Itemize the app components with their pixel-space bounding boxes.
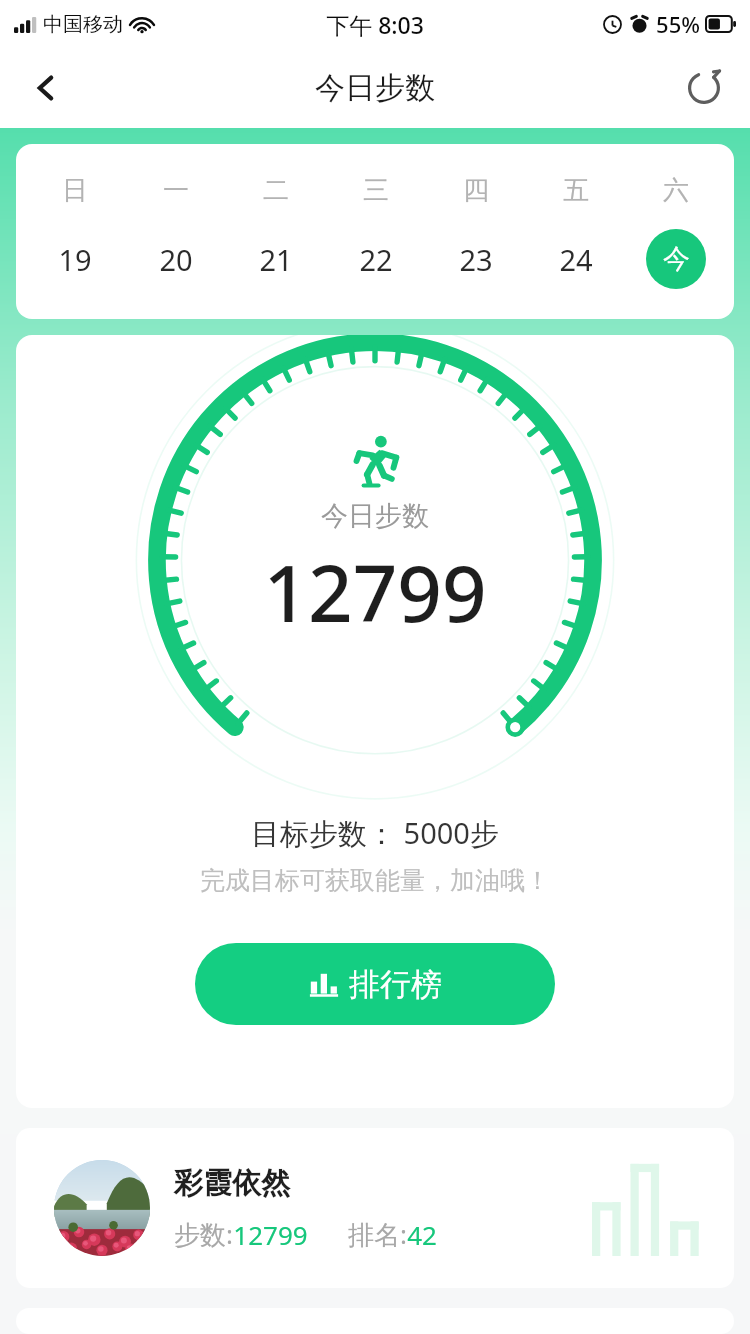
staticText: 12799 [263, 539, 487, 645]
staticText: 23 [459, 240, 493, 279]
staticText: 下午 8:03 [326, 9, 424, 40]
button[interactable]: Refresh [676, 60, 732, 116]
staticText: 排行榜 [349, 965, 442, 1004]
staticText: 四 [463, 174, 489, 207]
staticText: 日 [62, 174, 88, 207]
staticText: 19 [58, 240, 92, 279]
staticText: 21 [259, 240, 293, 279]
staticText: 一 [163, 174, 189, 207]
staticText: 六 [663, 174, 689, 207]
button[interactable]: 四 [426, 144, 526, 319]
button[interactable]: 彩霞依然 [16, 1128, 734, 1288]
staticText: 中国移动 [43, 12, 123, 37]
button[interactable]: Back [18, 60, 74, 116]
button[interactable]: 一 [125, 144, 226, 319]
staticText: 目标步数： 5000步 [251, 813, 499, 853]
staticText: 彩霞依然 [174, 1165, 290, 1202]
staticText: 20 [159, 240, 193, 279]
button[interactable]: 六 [626, 144, 726, 319]
staticText: 三 [363, 174, 389, 207]
staticText: 步数: [174, 1216, 233, 1252]
button[interactable]: 二 [226, 144, 326, 319]
staticText: 12799 [233, 1217, 308, 1252]
staticText: 24 [559, 240, 593, 279]
button[interactable]: 日 [24, 144, 125, 319]
button[interactable]: 三 [326, 144, 426, 319]
staticText: 完成目标可获取能量，加油哦！ [200, 865, 550, 896]
staticText: 今 [663, 242, 690, 276]
staticText: 二 [263, 174, 289, 207]
staticText: 排名: [348, 1216, 407, 1252]
staticText: 今日步数 [321, 499, 429, 533]
staticText: 今日步数 [315, 69, 435, 107]
staticText: 五 [563, 174, 589, 207]
button[interactable]: 排行榜 [195, 943, 555, 1025]
staticText: 22 [359, 240, 393, 279]
button[interactable]: 五 [526, 144, 626, 319]
staticText: 42 [407, 1217, 437, 1252]
staticText: 55% [656, 9, 700, 39]
